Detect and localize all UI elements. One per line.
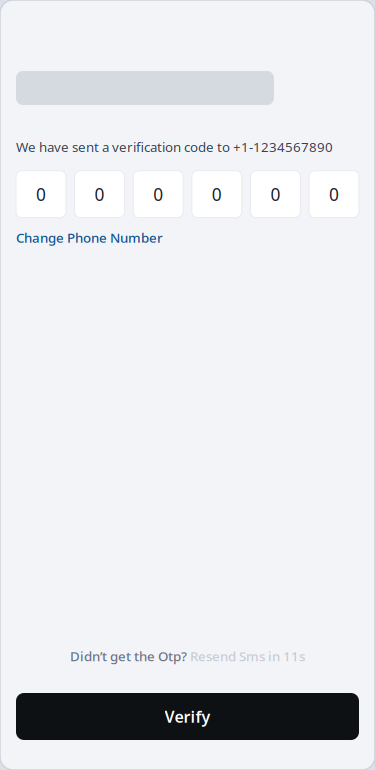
- button[interactable]: Verification code digit: [133, 171, 183, 218]
- staticText: Resend Sms in 11s: [190, 647, 305, 665]
- button[interactable]: Verify: [16, 693, 359, 740]
- button[interactable]: Verification code digit: [309, 171, 359, 218]
- button[interactable]: Verification code digit: [75, 171, 125, 218]
- staticText: Change Phone Number: [16, 229, 163, 246]
- staticText: 0: [36, 183, 46, 206]
- staticText: We have sent a verification code to +1-1…: [16, 138, 333, 156]
- staticText: 0: [270, 183, 280, 206]
- staticText: 0: [212, 183, 222, 206]
- button[interactable]: Verification code digit: [192, 171, 242, 218]
- button[interactable]: Change Phone Number: [16, 229, 163, 246]
- staticText: 0: [95, 183, 105, 206]
- button[interactable]: Verification code digit: [16, 171, 66, 218]
- staticText: 0: [329, 183, 339, 206]
- button[interactable]: Resend Sms in 11s: [190, 647, 305, 665]
- staticText: Didn’t get the Otp?: [70, 647, 190, 665]
- button[interactable]: Verification code digit: [250, 171, 300, 218]
- staticText: Verify: [164, 706, 210, 727]
- staticText: 0: [153, 183, 163, 206]
